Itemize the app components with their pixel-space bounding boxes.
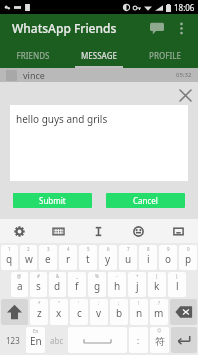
staticText: & [56,273,60,279]
button[interactable]: 8 [139,245,157,270]
staticText: 05:32 [176,71,192,79]
button[interactable]: 7 [119,245,137,270]
button[interactable]: 2 [20,245,37,270]
staticText: i [147,252,150,266]
button[interactable]: 0 [179,245,197,270]
staticText: v [96,306,102,320]
staticText: o [165,252,172,266]
staticText: ? [158,300,160,306]
button[interactable]: - [108,272,126,297]
staticText: u [125,252,132,266]
staticText: En [30,334,42,348]
staticText: y [105,252,111,266]
staticText: _ [76,273,78,279]
staticText: : [137,335,140,346]
button[interactable]: Enter [171,327,197,353]
button[interactable]: Chats [144,15,170,41]
staticText: 6 [107,246,110,252]
button[interactable]: Emoji [118,219,158,243]
button[interactable]: 5 [79,245,97,270]
staticText: En [33,328,39,334]
button[interactable]: 123 [1,327,24,353]
staticText: h [114,279,121,293]
button[interactable]: Clipboard [158,219,198,243]
button[interactable]: hello guys and grils [10,105,188,181]
button[interactable]: * [30,299,48,325]
staticText: abc [50,335,64,346]
staticText: f [75,279,79,293]
button[interactable]: 3 [39,245,57,270]
button[interactable]: 9 [159,245,177,270]
staticText: k [154,279,160,293]
staticText: # [37,273,40,279]
staticText: t [86,252,90,266]
button[interactable]: FRIENDS [0,42,66,68]
button[interactable]: En [26,327,45,353]
staticText: : [98,300,100,306]
button[interactable]: More options [170,17,192,39]
button[interactable]: Cancel [106,193,185,208]
button[interactable]: 4 [59,245,77,270]
button[interactable]: Keyboard layout [39,219,78,243]
button[interactable]: Text cursor [78,219,118,243]
staticText: b [116,306,123,320]
button[interactable]: Submit [13,193,92,208]
staticText: 3 [47,246,50,252]
button[interactable]: ( [148,272,166,297]
button[interactable]: ! [130,299,148,325]
button[interactable]: abc [47,327,66,353]
button[interactable]: PROFILE [132,42,198,68]
button[interactable]: Shift [1,299,28,325]
button[interactable]: Space [68,327,127,353]
button[interactable]: 6 [99,245,117,270]
button[interactable]: ☺ [150,327,169,353]
staticText: hello guys and grils [16,112,108,126]
staticText: n [136,306,143,320]
button[interactable]: @ [11,272,28,297]
staticText: * [38,300,41,306]
staticText: ☺ [157,328,162,333]
button[interactable]: ) [168,272,186,297]
button[interactable]: ; [110,299,128,325]
button[interactable]: + [128,272,146,297]
staticText: ' [78,300,80,306]
staticText: " [58,300,60,306]
button[interactable]: ? [150,299,168,325]
button[interactable]: _ [68,272,86,297]
button[interactable]: MESSAGE [66,42,132,68]
button[interactable]: 1 [1,245,18,270]
staticText: q [6,252,13,266]
button[interactable]: % [88,272,106,297]
button[interactable]: : [129,327,148,353]
button[interactable]: ' [70,299,88,325]
button[interactable]: Close [176,86,194,104]
staticText: j [136,279,139,293]
staticText: d [54,279,61,293]
staticText: + [136,273,139,279]
staticText: ( [156,273,158,279]
button[interactable]: # [30,272,47,297]
button[interactable]: " [50,299,68,325]
button[interactable]: & [49,272,66,297]
button[interactable]: Settings [0,219,39,243]
staticText: p [185,252,192,266]
staticText: @ [17,273,22,279]
staticText: vince [23,69,45,81]
staticText: w [25,252,33,266]
staticText: 9 [167,246,170,252]
staticText: 符 [155,335,165,348]
staticText: % [95,273,99,279]
staticText: m [154,306,164,320]
staticText: ! [138,300,140,306]
staticText: MESSAGE [81,50,117,61]
staticText: g [94,279,101,293]
staticText: 2 [27,246,30,252]
staticText: 123 [6,335,20,346]
staticText: 1 [8,246,11,252]
staticText: Cancel [133,195,158,206]
button[interactable]: : [90,299,108,325]
staticText: ; [118,300,120,306]
button[interactable]: Backspace [170,299,197,325]
staticText: PROFILE [149,50,181,61]
staticText: - [116,273,118,279]
